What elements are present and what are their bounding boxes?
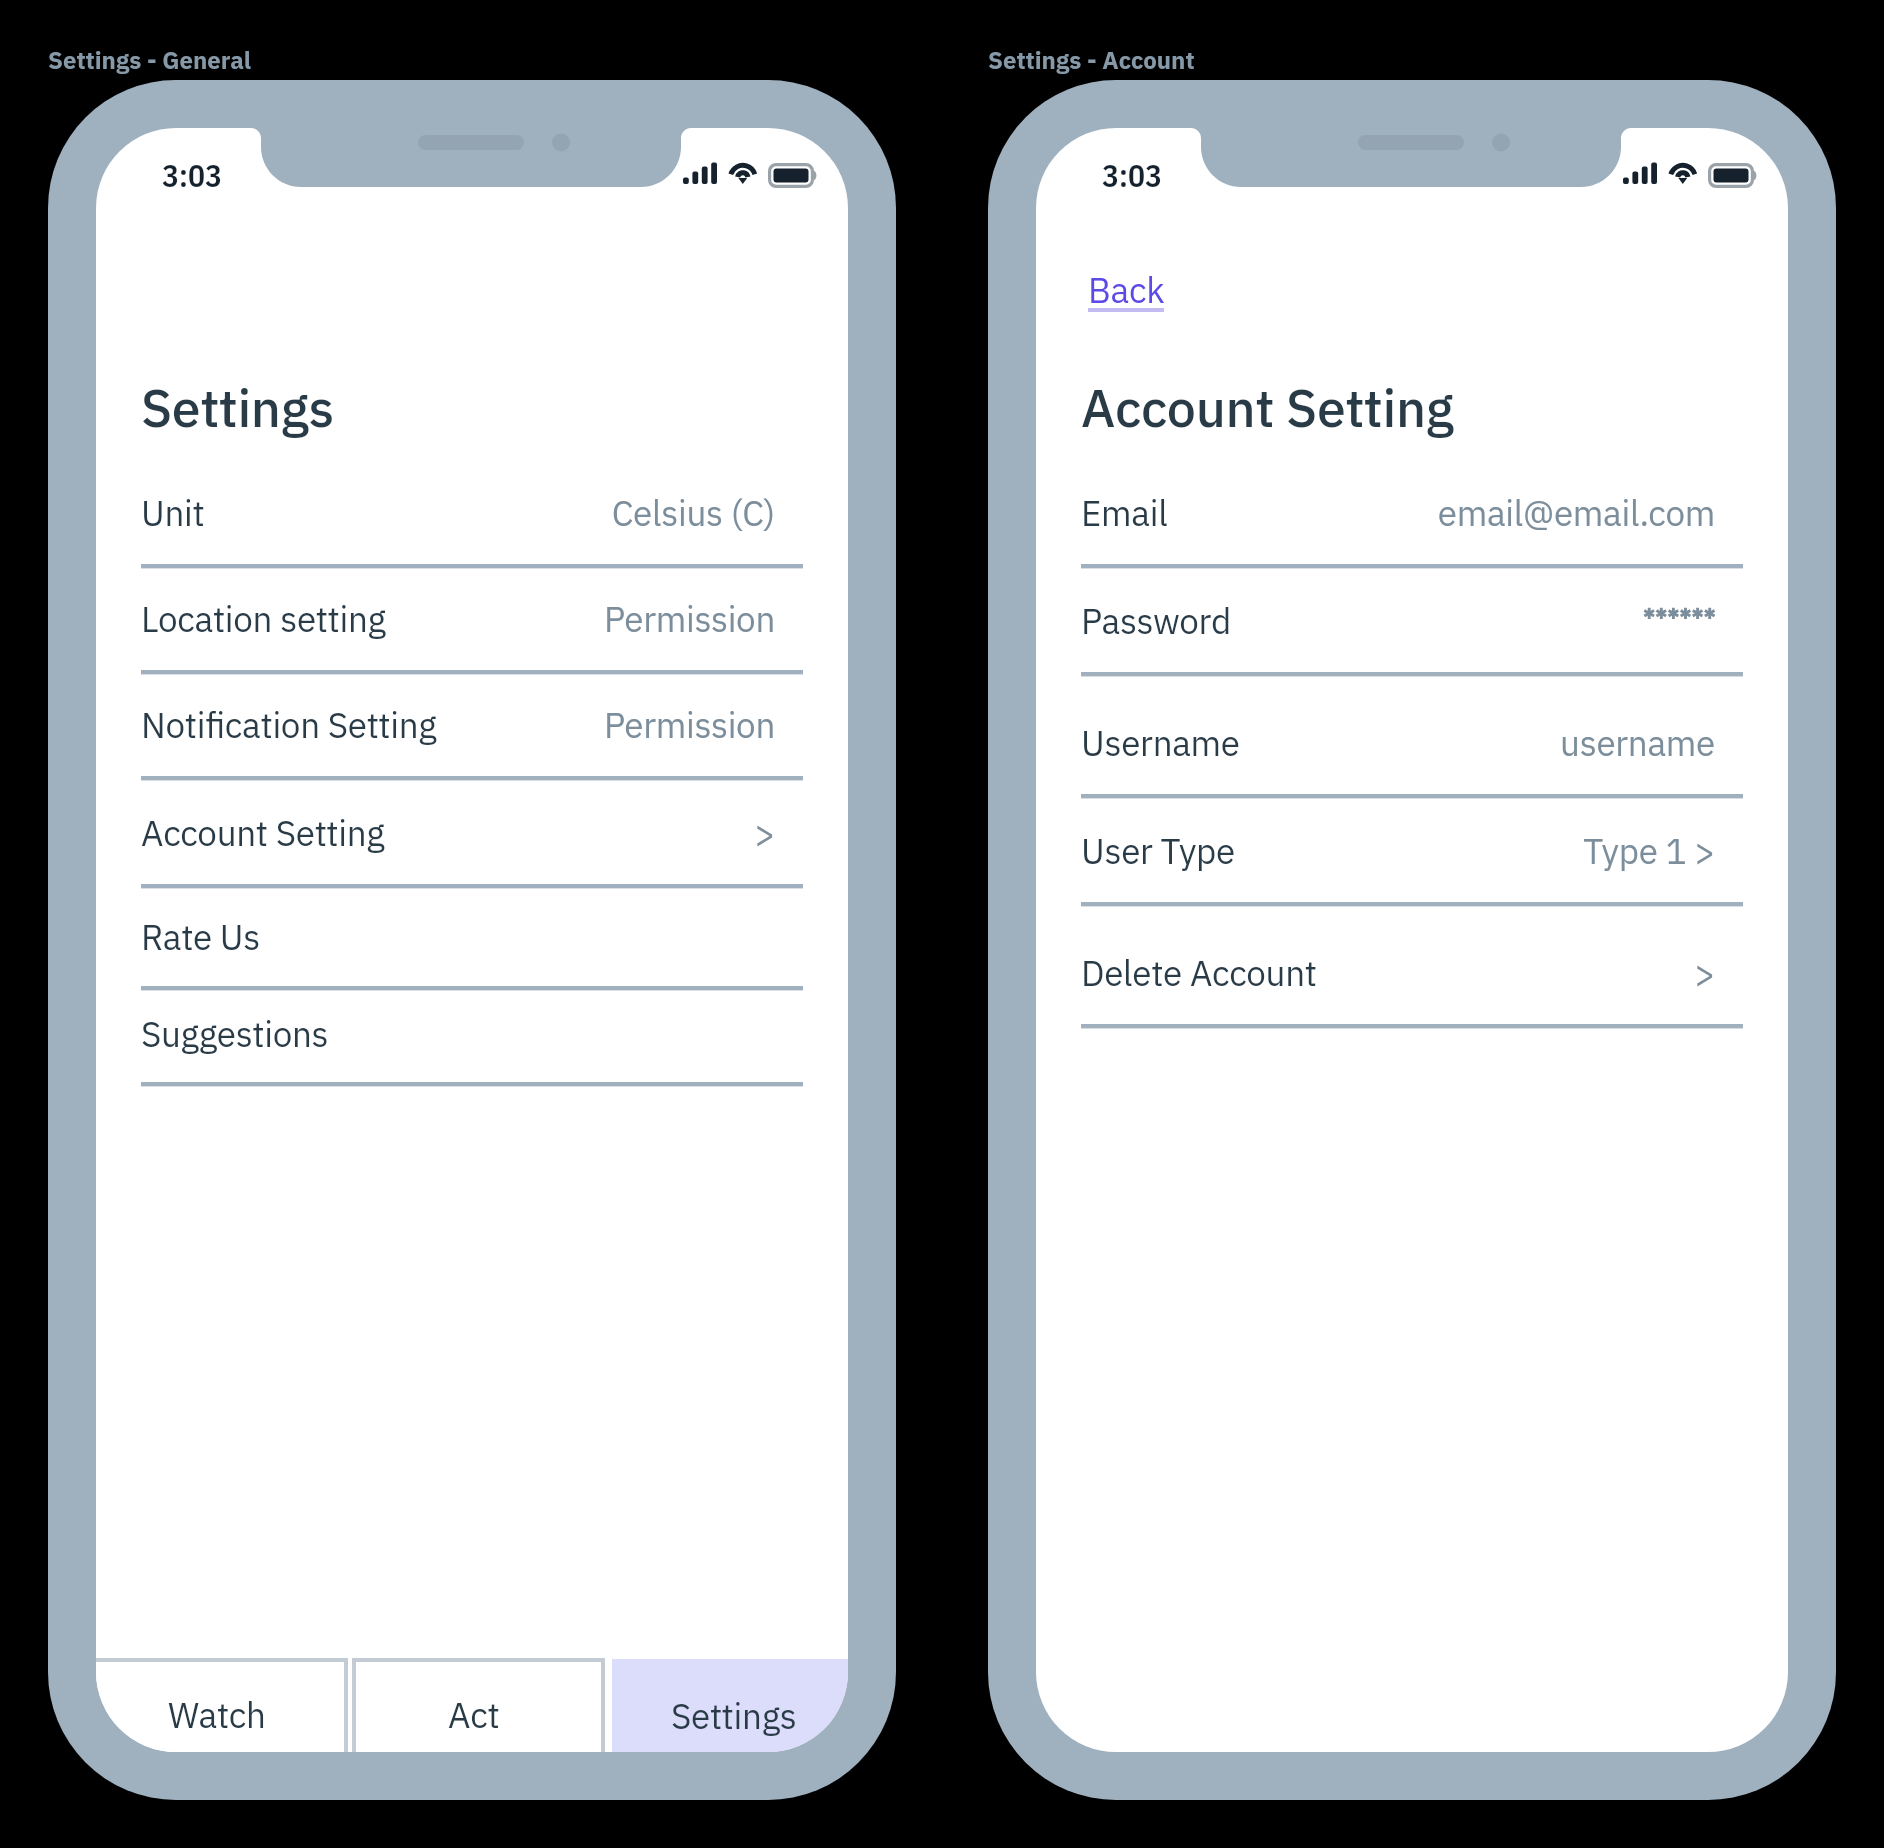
staticText: email@email.com bbox=[1036, 490, 1715, 600]
staticText: Permission bbox=[96, 702, 775, 812]
staticText: 3:03 bbox=[162, 155, 222, 196]
staticText: Back bbox=[1088, 267, 1165, 313]
staticText: username bbox=[1036, 720, 1715, 846]
button[interactable]: Watch bbox=[96, 1658, 348, 1752]
staticText: Type 1 > bbox=[1036, 828, 1715, 940]
staticText: Email bbox=[1081, 490, 1168, 536]
staticText: > bbox=[96, 810, 775, 922]
button[interactable]: Suggestions bbox=[96, 986, 848, 1086]
staticText: Celsius (C) bbox=[96, 490, 775, 600]
staticText: Permission bbox=[96, 596, 775, 706]
staticText: Settings bbox=[671, 1693, 797, 1739]
button[interactable]: User Type bbox=[1036, 794, 1788, 906]
staticText: Settings - Account bbox=[988, 44, 1195, 75]
staticText: Rate Us bbox=[141, 914, 261, 960]
staticText: User Type bbox=[1081, 828, 1235, 874]
button[interactable]: Act bbox=[352, 1658, 605, 1752]
staticText: > bbox=[1036, 950, 1715, 1076]
button[interactable]: Settings bbox=[612, 1659, 848, 1752]
staticText: 3:03 bbox=[1102, 155, 1162, 196]
staticText: Account Setting bbox=[141, 810, 385, 856]
staticText: Location setting bbox=[141, 596, 386, 642]
staticText: Watch bbox=[168, 1692, 266, 1738]
staticText: Suggestions bbox=[141, 1011, 329, 1057]
staticText: Delete Account bbox=[1081, 950, 1317, 996]
staticText: Act bbox=[448, 1692, 500, 1738]
button[interactable]: Back bbox=[1088, 267, 1165, 313]
staticText: Password bbox=[1081, 598, 1231, 644]
staticText: Settings bbox=[141, 374, 334, 442]
staticText: Notification Setting bbox=[141, 702, 437, 748]
button[interactable]: Account Setting bbox=[96, 776, 848, 888]
button[interactable]: Rate Us bbox=[96, 884, 848, 990]
button[interactable]: Location setting bbox=[96, 564, 848, 674]
button[interactable]: Password bbox=[1036, 564, 1788, 676]
staticText: Username bbox=[1081, 720, 1240, 766]
button[interactable]: Unit bbox=[96, 458, 848, 568]
staticText: Account Setting bbox=[1081, 374, 1454, 442]
button[interactable]: Username bbox=[1036, 672, 1788, 798]
button[interactable]: Email bbox=[1036, 458, 1788, 568]
staticText: Settings - General bbox=[48, 44, 252, 75]
button[interactable]: Notification Setting bbox=[96, 670, 848, 780]
staticText: Unit bbox=[141, 490, 205, 536]
button[interactable]: Delete Account bbox=[1036, 902, 1788, 1028]
